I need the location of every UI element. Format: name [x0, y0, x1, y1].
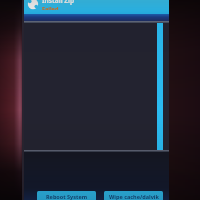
- staticText: Failed: [42, 5, 59, 10]
- button[interactable]: Wipe cache/dalvik: [104, 191, 163, 200]
- staticText: Reboot System: [46, 193, 88, 200]
- staticText: Wipe cache/dalvik: [109, 193, 159, 200]
- staticText: Install Zip: [42, 0, 75, 5]
- button[interactable]: Reboot System: [37, 191, 96, 200]
- other: Install Zip: [25, 0, 41, 11]
